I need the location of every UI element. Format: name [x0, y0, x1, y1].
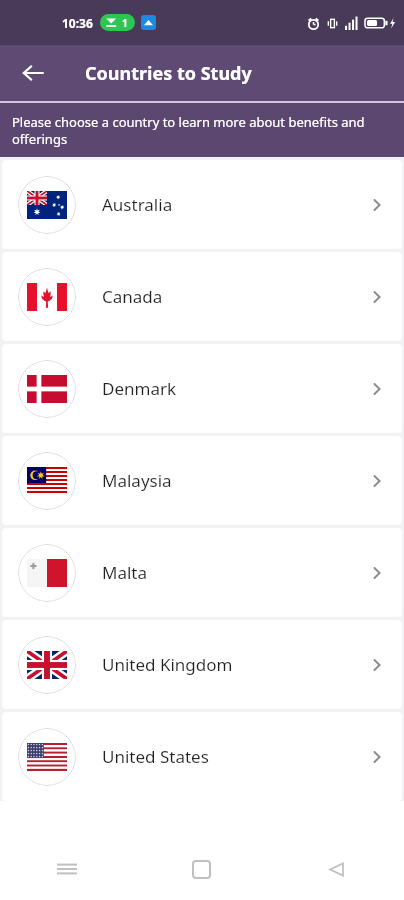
- staticText: Countries to Study: [85, 61, 252, 86]
- button[interactable]: Back: [12, 52, 54, 94]
- button[interactable]: Back: [269, 838, 404, 900]
- staticText: Malaysia: [102, 469, 172, 492]
- button[interactable]: Malaysia: [2, 436, 402, 525]
- button[interactable]: Recent apps: [0, 838, 134, 900]
- staticText: Please choose a country to learn more ab…: [12, 113, 390, 148]
- staticText: Canada: [102, 285, 163, 308]
- button[interactable]: Denmark: [2, 344, 402, 433]
- staticText: 10:36: [62, 15, 93, 31]
- staticText: Denmark: [102, 377, 177, 400]
- button[interactable]: Canada: [2, 252, 402, 341]
- staticText: Australia: [102, 193, 173, 216]
- button[interactable]: United States: [2, 712, 402, 801]
- button[interactable]: Australia: [2, 160, 402, 249]
- button[interactable]: Home: [134, 838, 269, 900]
- staticText: Malta: [102, 561, 148, 584]
- staticText: United States: [102, 745, 209, 768]
- staticText: United Kingdom: [102, 653, 233, 676]
- button[interactable]: United Kingdom: [2, 620, 402, 709]
- button[interactable]: Malta: [2, 528, 402, 617]
- staticText: 1: [122, 16, 128, 30]
